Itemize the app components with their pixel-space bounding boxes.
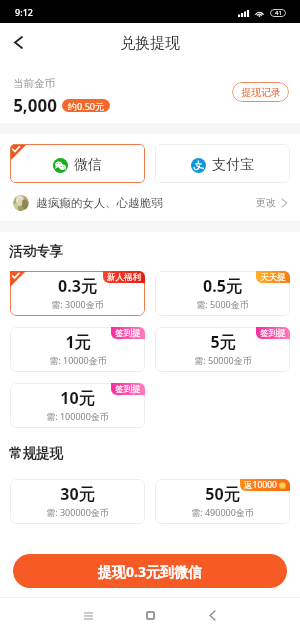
staticText: 签到提 xyxy=(115,328,141,339)
button[interactable]: 越疯癫的女人、心越脆弱 xyxy=(0,184,300,221)
staticText: 需: 100000金币 xyxy=(46,410,109,422)
button[interactable]: 提现记录 xyxy=(232,82,289,102)
staticText: 5元 xyxy=(210,331,236,353)
staticText: 50元 xyxy=(205,483,240,505)
staticText: 需: 300000金币 xyxy=(46,506,109,518)
staticText: 天天提 xyxy=(260,272,286,283)
button[interactable]: 30元 xyxy=(10,479,145,524)
staticText: 支付宝 xyxy=(212,156,254,174)
staticText: 兑换提现 xyxy=(120,34,180,53)
staticText: 41 xyxy=(275,9,282,17)
staticText: 活动专享 xyxy=(9,243,63,260)
staticText: 更改 xyxy=(256,196,276,209)
staticText: 0.5元 xyxy=(203,275,242,297)
staticText: 5,000 xyxy=(13,94,57,117)
staticText: 需: 490000金币 xyxy=(191,506,254,518)
staticText: 提现0.3元到微信 xyxy=(98,562,202,581)
staticText: 提现记录 xyxy=(241,86,281,99)
button[interactable]: 50元 xyxy=(155,479,290,524)
button[interactable]: 10元 xyxy=(10,383,145,428)
button[interactable]: Recents xyxy=(77,604,99,626)
button[interactable]: Back xyxy=(0,23,36,59)
staticText: 需: 50000金币 xyxy=(194,354,252,366)
staticText: 常规提现 xyxy=(9,445,63,462)
button[interactable]: 微信 xyxy=(10,144,145,183)
button[interactable]: Home xyxy=(139,604,161,626)
staticText: 1元 xyxy=(65,331,91,353)
button[interactable]: 提现0.3元到微信 xyxy=(13,554,287,588)
staticText: 签到提 xyxy=(115,384,141,395)
button[interactable]: 5元 xyxy=(155,327,290,372)
staticText: 越疯癫的女人、心越脆弱 xyxy=(36,196,163,210)
staticText: 9:12 xyxy=(15,6,33,18)
staticText: 返10000 xyxy=(244,479,277,491)
staticText: 10元 xyxy=(60,387,95,409)
button[interactable]: 0.5元 xyxy=(155,271,290,316)
staticText: 需: 5000金币 xyxy=(196,298,249,310)
staticText: 约0.50元 xyxy=(68,100,104,112)
button[interactable]: 1元 xyxy=(10,327,145,372)
staticText: 微信 xyxy=(74,156,102,174)
button[interactable]: Back xyxy=(201,604,223,626)
button[interactable]: 支付宝 xyxy=(155,144,290,183)
staticText: 30元 xyxy=(60,483,95,505)
staticText: 当前金币 xyxy=(13,77,55,90)
staticText: 新人福利 xyxy=(107,272,141,283)
staticText: 需: 3000金币 xyxy=(51,298,104,310)
staticText: 签到提 xyxy=(260,328,286,339)
staticText: 0.3元 xyxy=(58,275,97,297)
button[interactable]: 0.3元 xyxy=(10,271,145,316)
staticText: 需: 10000金币 xyxy=(49,354,107,366)
